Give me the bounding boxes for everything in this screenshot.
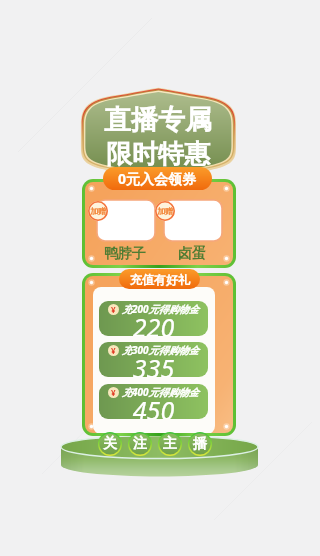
staticText: 限时特惠 [106,138,210,171]
button[interactable]: 关 [98,432,122,456]
button[interactable]: 注 [128,432,152,456]
button[interactable]: 加赠 [159,182,233,265]
staticText: 播 [193,435,207,453]
staticText: ¥ [111,304,116,315]
button[interactable]: 0元入会领券 [103,167,212,190]
staticText: 注 [133,435,147,453]
button[interactable]: 播 [188,432,212,456]
button[interactable]: ¥ [99,301,208,336]
staticText: 关 [103,435,117,453]
staticText: 充200元得购物金 [122,302,199,316]
staticText: 335 [99,351,208,377]
staticText: ¥ [111,345,116,356]
staticText: 0元入会领券 [118,169,197,188]
button[interactable]: 充值有好礼 [119,269,200,289]
button[interactable]: ¥ [99,342,208,377]
button[interactable]: 加赠 [85,182,159,265]
staticText: 卤蛋 [155,245,229,263]
staticText: 加赠 [157,206,173,216]
staticText: 450 [99,393,208,419]
staticText: 鸭脖子 [88,245,162,263]
staticText: 220 [99,310,208,336]
button[interactable]: 主 [158,432,182,456]
staticText: 直播专属 [104,103,212,137]
staticText: 充400元得购物金 [122,385,199,399]
staticText: 主 [163,435,177,453]
button[interactable]: ¥ [99,384,208,419]
staticText: 充值有好礼 [130,272,190,287]
staticText: ¥ [111,387,116,398]
staticText: 加赠 [90,206,106,216]
staticText: 充300元得购物金 [122,343,199,357]
